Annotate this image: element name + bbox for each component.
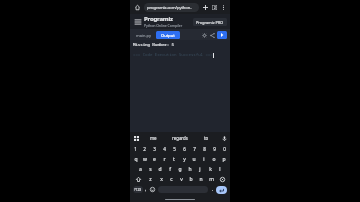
button[interactable]: Backspace	[216, 174, 229, 184]
staticText: Programiz PRO	[196, 20, 224, 25]
button[interactable]: 9	[209, 144, 219, 154]
button[interactable]: j	[195, 164, 205, 174]
button[interactable]: t	[169, 154, 179, 164]
button[interactable]: v	[176, 174, 186, 184]
button[interactable]: programiz.com/python-programming/online-…	[144, 3, 199, 12]
staticText: 2	[143, 146, 146, 152]
button[interactable]: o	[209, 154, 219, 164]
staticText: e	[153, 156, 156, 163]
button[interactable]: i	[199, 154, 209, 164]
staticText: j	[199, 166, 201, 173]
staticText: 3	[153, 146, 156, 152]
button[interactable]: Tabs	[210, 3, 219, 12]
button[interactable]: u	[189, 154, 199, 164]
staticText: 4	[163, 146, 166, 152]
button[interactable]: n	[196, 174, 206, 184]
button[interactable]: w	[140, 154, 149, 164]
staticText: 0	[223, 146, 226, 152]
staticText: Missing Number: 5	[133, 42, 175, 48]
button[interactable]: e	[149, 154, 159, 164]
button[interactable]: 7	[189, 144, 199, 154]
staticText: y	[183, 156, 186, 163]
staticText: regards	[172, 135, 188, 141]
staticText: q	[134, 156, 138, 163]
button[interactable]: 3	[149, 144, 159, 154]
staticText: t	[173, 156, 175, 163]
staticText: Python Online Compiler	[144, 23, 183, 28]
staticText: w	[143, 156, 147, 163]
button[interactable]: Enter	[216, 186, 227, 194]
button[interactable]: Programiz PRO	[193, 18, 227, 26]
button[interactable]: .	[210, 184, 216, 195]
staticText: 7	[193, 146, 196, 152]
staticText: c	[170, 176, 173, 183]
staticText: f	[169, 166, 171, 173]
staticText: v	[180, 176, 183, 183]
button[interactable]: l	[215, 164, 225, 174]
button[interactable]: regards	[166, 132, 193, 144]
staticText: to	[204, 135, 209, 141]
button[interactable]: Keyboard toolbar	[132, 134, 140, 142]
staticText: === Code Execution Successful ===	[133, 52, 213, 58]
staticText: Programiz	[144, 15, 173, 23]
button[interactable]: 0	[219, 144, 229, 154]
button[interactable]: Output	[156, 31, 180, 39]
button[interactable]: New tab	[201, 3, 210, 12]
button[interactable]: Home	[133, 3, 142, 12]
button[interactable]: c	[166, 174, 176, 184]
button[interactable]: Menu	[133, 17, 142, 26]
button[interactable]: a	[135, 164, 145, 174]
button[interactable]: q	[131, 154, 140, 164]
button[interactable]: ,	[143, 184, 149, 195]
button[interactable]: me	[140, 132, 166, 144]
button[interactable]: Emoji	[149, 186, 156, 193]
staticText: 1	[134, 146, 137, 152]
button[interactable]: main.py	[133, 31, 154, 39]
button[interactable]: h	[185, 164, 195, 174]
staticText: me	[150, 135, 157, 141]
button[interactable]: Share	[208, 31, 216, 39]
button[interactable]: s	[145, 164, 155, 174]
button[interactable]: y	[179, 154, 189, 164]
button[interactable]: 8	[199, 144, 209, 154]
button[interactable]: b	[186, 174, 196, 184]
staticText: u	[192, 156, 196, 163]
button[interactable]: 1	[131, 144, 140, 154]
staticText: 9	[213, 146, 216, 152]
staticText: s	[149, 166, 152, 173]
button[interactable]: m	[206, 174, 216, 184]
button[interactable]: x	[156, 174, 166, 184]
button[interactable]: 2	[140, 144, 149, 154]
button[interactable]: r	[159, 154, 169, 164]
staticText: d	[158, 166, 162, 173]
button[interactable]: 4	[159, 144, 169, 154]
button[interactable]: g	[175, 164, 185, 174]
staticText: n	[199, 176, 203, 183]
button[interactable]: Missing Number: 5	[130, 40, 230, 132]
staticText: main.py	[136, 33, 151, 38]
staticText: ,	[145, 186, 147, 193]
button[interactable]: Voice input	[220, 134, 228, 142]
button[interactable]: Theme	[200, 31, 208, 39]
staticText: Output	[161, 33, 175, 38]
button[interactable]: Shift	[131, 174, 145, 184]
staticText: x	[160, 176, 163, 183]
button[interactable]: to	[193, 132, 220, 144]
button[interactable]: p	[219, 154, 229, 164]
button[interactable]: f	[165, 164, 175, 174]
staticText: 5	[173, 146, 176, 152]
button[interactable]: z	[145, 174, 156, 184]
button[interactable]: k	[205, 164, 215, 174]
staticText: o	[212, 156, 216, 163]
button[interactable]: ?123	[133, 186, 143, 193]
button[interactable]: d	[155, 164, 165, 174]
button[interactable]: 5	[169, 144, 179, 154]
button[interactable]: Run	[217, 31, 227, 39]
staticText: h	[188, 166, 192, 173]
staticText: 6	[183, 146, 186, 152]
button[interactable]: 6	[179, 144, 189, 154]
staticText: z	[149, 176, 152, 183]
button[interactable]: More options	[219, 3, 227, 11]
staticText: m	[209, 176, 214, 183]
